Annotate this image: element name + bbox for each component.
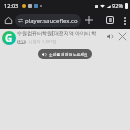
staticText: player.sauceflex.com <box>25 17 78 25</box>
staticText: LIVE <box>18 40 25 44</box>
button[interactable]: More options <box>119 15 130 26</box>
button[interactable]: 소리를 켜려면 누르세요 <box>38 49 92 59</box>
staticText: 수원컴퓨터학원[대전지역 아이티 학원 <box>17 30 99 37</box>
button[interactable]: Home <box>2 14 14 26</box>
button[interactable]: New tab <box>83 14 95 26</box>
staticText: 소리를 켜려면 누르세요 <box>49 52 88 57</box>
button[interactable]: Mute <box>105 31 116 42</box>
button[interactable]: player.sauceflex.com <box>15 14 81 27</box>
staticText: 시청자 1,281명 <box>28 39 57 45</box>
staticText: G <box>5 31 13 45</box>
button[interactable]: Tabs <box>104 14 116 26</box>
staticText: 12:03 <box>4 2 19 10</box>
staticText: 92% <box>112 2 124 10</box>
staticText: 8 <box>109 17 112 23</box>
button[interactable]: G <box>2 31 16 45</box>
button[interactable]: Close <box>117 31 128 42</box>
